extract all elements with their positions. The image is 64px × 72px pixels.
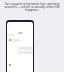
staticText: Get support in between live coaching ses…: [3, 2, 61, 12]
